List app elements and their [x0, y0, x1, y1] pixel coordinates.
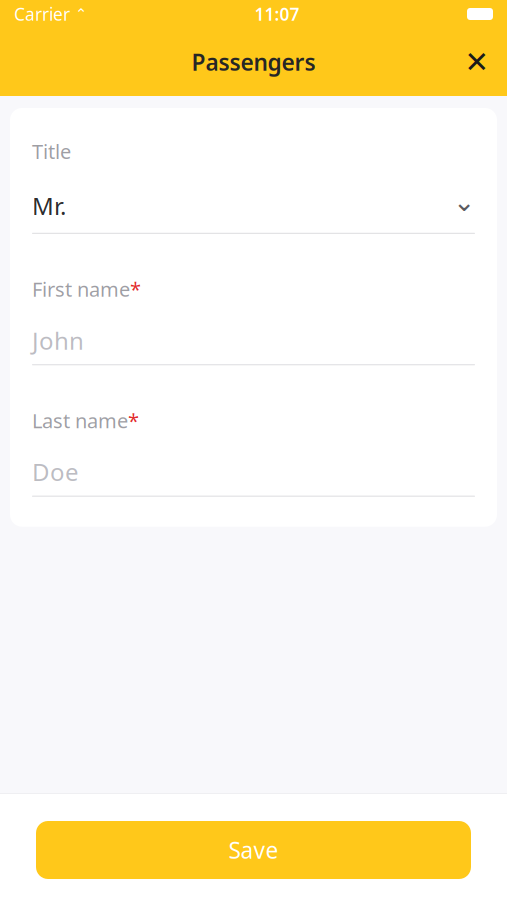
button[interactable]: Save [36, 821, 471, 879]
staticText: ⌃ [70, 6, 87, 22]
staticText: * [130, 276, 141, 302]
button[interactable]: John [32, 324, 475, 365]
staticText: John [32, 324, 84, 356]
staticText: ✕ [464, 45, 489, 79]
staticText: ⌄ [453, 187, 475, 217]
staticText: 11:07 [254, 2, 299, 25]
button[interactable]: Doe [32, 456, 475, 497]
staticText: Doe [32, 456, 79, 488]
button[interactable]: Mr. [32, 187, 475, 234]
staticText: Save [228, 835, 278, 865]
staticText: * [128, 407, 139, 434]
staticText: Title [32, 138, 71, 165]
staticText: Passengers [191, 47, 315, 77]
staticText: First name [32, 276, 130, 302]
staticText: Last name [32, 407, 128, 434]
staticText: Mr. [32, 190, 66, 222]
staticText: Carrier [14, 2, 70, 25]
button[interactable]: Close [455, 40, 499, 84]
